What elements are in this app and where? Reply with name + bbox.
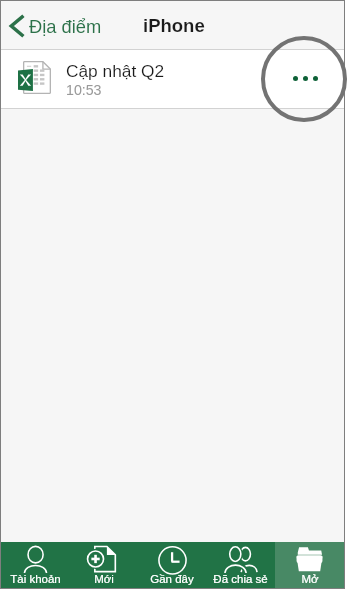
button[interactable]: Mở (275, 542, 344, 588)
staticText: Mới (94, 573, 114, 586)
button[interactable]: Tài khoản (1, 542, 69, 588)
staticText: Đã chia sẻ (213, 573, 268, 586)
staticText: iPhone (143, 15, 205, 36)
button[interactable]: Địa điểm (1, 7, 112, 45)
staticText: Gần đây (150, 573, 194, 586)
button[interactable]: Mới (69, 542, 137, 588)
staticText: Tài khoản (10, 573, 61, 586)
staticText: Địa điểm (29, 16, 102, 36)
staticText: Mở (301, 573, 319, 586)
button[interactable]: Cập nhật Q2 (1, 50, 344, 108)
button[interactable]: More options (277, 50, 333, 108)
button[interactable]: Đã chia sẻ (206, 542, 275, 588)
staticText: 10:53 (66, 82, 102, 98)
staticText: Cập nhật Q2 (66, 61, 165, 80)
button[interactable]: Gần đây (137, 542, 206, 588)
